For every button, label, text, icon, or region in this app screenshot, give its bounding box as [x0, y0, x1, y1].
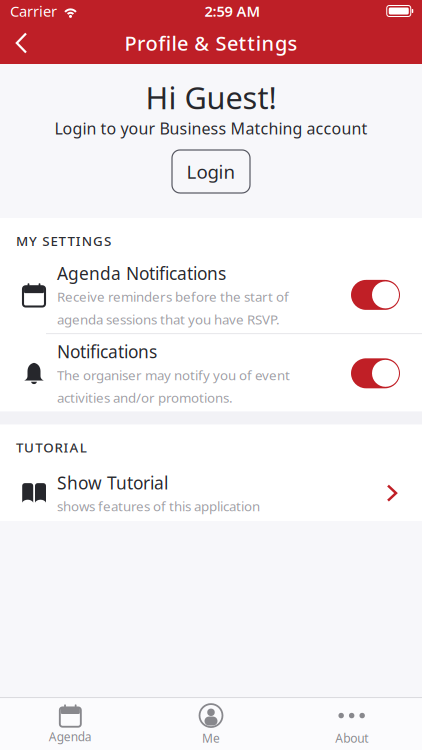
staticText: About [335, 730, 368, 746]
staticText: Hi Guest! [145, 77, 276, 118]
staticText: Login to your Business Matching account [54, 118, 367, 139]
staticText: Show Tutorial [57, 471, 168, 494]
button[interactable]: About [281, 698, 422, 750]
button[interactable]: Notifications [0, 334, 422, 411]
staticText: TUTORIAL [16, 438, 87, 456]
button[interactable]: Login [172, 150, 250, 193]
staticText: Agenda [49, 729, 92, 745]
staticText: The organiser may notify you of event ac… [57, 366, 290, 406]
staticText: Profile & Settings [124, 30, 298, 56]
staticText: shows features of this application [57, 497, 260, 515]
staticText: MY SETTINGS [16, 232, 111, 250]
button[interactable]: Show Tutorial [0, 462, 422, 521]
button[interactable]: Back [0, 22, 39, 64]
button[interactable]: Agenda Notifications [0, 256, 422, 333]
staticText: Login [186, 159, 235, 184]
button[interactable]: Agenda [0, 699, 141, 749]
staticText: Agenda Notifications [57, 262, 226, 285]
staticText: Notifications [57, 340, 157, 363]
staticText: Receive reminders before the start of ag… [57, 288, 289, 328]
button[interactable]: Me [141, 698, 281, 750]
staticText: 2:59 AM [204, 1, 260, 21]
staticText: Carrier [10, 1, 57, 21]
staticText: Me [202, 730, 220, 746]
